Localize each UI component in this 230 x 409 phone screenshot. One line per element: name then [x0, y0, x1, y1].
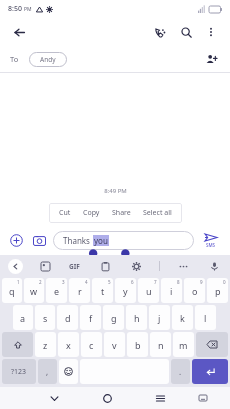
staticText: Andy	[40, 55, 56, 64]
staticText: Cut	[59, 208, 71, 218]
button[interactable]: Copy	[77, 206, 106, 220]
staticText: v	[112, 339, 117, 351]
button[interactable]: Switch keyboard	[195, 390, 211, 406]
button[interactable]: j	[149, 305, 170, 330]
staticText: 4	[85, 279, 88, 285]
button[interactable]: Andy	[29, 52, 67, 67]
button[interactable]: z	[35, 332, 56, 357]
button[interactable]: o	[184, 278, 205, 303]
button[interactable]: Enter	[192, 359, 228, 384]
button[interactable]: x	[58, 332, 79, 357]
button[interactable]: l	[195, 305, 216, 330]
staticText: To	[10, 54, 19, 64]
button[interactable]: GIF	[67, 260, 82, 273]
button[interactable]: Add attachment	[6, 230, 26, 250]
staticText: y	[123, 285, 128, 297]
staticText: SMS	[206, 242, 216, 248]
staticText: 8:49 PM	[104, 187, 127, 195]
button[interactable]: More	[175, 258, 191, 274]
button[interactable]: Back	[10, 23, 28, 41]
button[interactable]: w	[24, 278, 44, 303]
button[interactable]: t	[92, 278, 113, 303]
button[interactable]: r	[69, 278, 90, 303]
button[interactable]: Send SMS	[198, 227, 224, 253]
staticText: a	[20, 312, 26, 324]
button[interactable]: p	[207, 278, 228, 303]
staticText: ,	[46, 366, 49, 377]
staticText: c	[89, 339, 94, 351]
button[interactable]: Add contact	[202, 50, 220, 68]
staticText: u	[146, 285, 152, 297]
button[interactable]: Close toolbar	[8, 259, 23, 274]
button[interactable]: Home	[98, 389, 116, 407]
button[interactable]: y	[115, 278, 136, 303]
button[interactable]: Search	[176, 22, 196, 42]
button[interactable]: Settings	[128, 258, 144, 274]
button[interactable]: ,	[38, 359, 57, 384]
staticText: 7	[154, 279, 157, 285]
staticText: .	[179, 366, 182, 377]
staticText: n	[158, 339, 164, 351]
button[interactable]: f	[80, 305, 101, 330]
button[interactable]: Emoji	[59, 359, 78, 384]
staticText: ?123	[11, 367, 27, 377]
staticText: k	[180, 312, 185, 324]
button[interactable]: Voice input	[206, 258, 222, 274]
button[interactable]: Call	[150, 22, 170, 42]
staticText: r	[78, 285, 82, 297]
button[interactable]: b	[127, 332, 148, 357]
button[interactable]: g	[103, 305, 124, 330]
staticText: f	[89, 312, 93, 324]
button[interactable]: i	[161, 278, 182, 303]
staticText: i	[170, 285, 173, 297]
button[interactable]: ?123	[2, 359, 36, 384]
staticText: m	[179, 339, 188, 351]
button[interactable]: .	[171, 359, 190, 384]
button[interactable]: s	[35, 305, 55, 330]
button[interactable]: Share	[106, 206, 137, 220]
button[interactable]: Select all	[137, 206, 178, 220]
staticText: e	[54, 285, 60, 297]
button[interactable]: v	[104, 332, 125, 357]
button[interactable]: c	[81, 332, 102, 357]
button[interactable]: Backspace	[196, 332, 228, 357]
staticText: 1	[17, 279, 20, 285]
button[interactable]: Stickers	[37, 258, 53, 274]
staticText: 6	[131, 279, 134, 285]
staticText: 3	[62, 279, 65, 285]
staticText: Select all	[143, 208, 172, 218]
button[interactable]: Shift	[2, 332, 33, 357]
button[interactable]: e	[46, 278, 67, 303]
staticText: you	[94, 235, 108, 246]
staticText: p	[215, 285, 221, 297]
staticText: o	[192, 285, 198, 297]
button[interactable]: k	[172, 305, 193, 330]
button[interactable]: u	[138, 278, 159, 303]
button[interactable]: Clipboard	[97, 258, 113, 274]
button[interactable]: a	[13, 305, 33, 330]
staticText: h	[134, 312, 140, 324]
staticText: l	[204, 312, 207, 324]
button[interactable]: More options	[202, 23, 220, 41]
button[interactable]: Back	[45, 389, 63, 407]
button[interactable]: n	[150, 332, 171, 357]
button[interactable]: Cut	[53, 206, 77, 220]
staticText: w	[30, 285, 38, 297]
button[interactable]: m	[173, 332, 194, 357]
staticText: GIF	[69, 262, 80, 271]
staticText: d	[65, 312, 71, 324]
staticText: 5	[108, 279, 111, 285]
button[interactable]: Recent apps	[151, 389, 169, 407]
staticText: j	[158, 312, 161, 324]
staticText: b	[135, 339, 141, 351]
staticText: z	[43, 339, 48, 351]
button[interactable]: h	[126, 305, 147, 330]
staticText: 9	[200, 279, 203, 285]
staticText: Thanks	[63, 235, 93, 246]
button[interactable]: q	[2, 278, 22, 303]
button[interactable]: Camera	[29, 230, 49, 250]
button[interactable]: Thanks	[53, 231, 194, 250]
button[interactable]: d	[57, 305, 78, 330]
staticText: Copy	[83, 208, 100, 218]
